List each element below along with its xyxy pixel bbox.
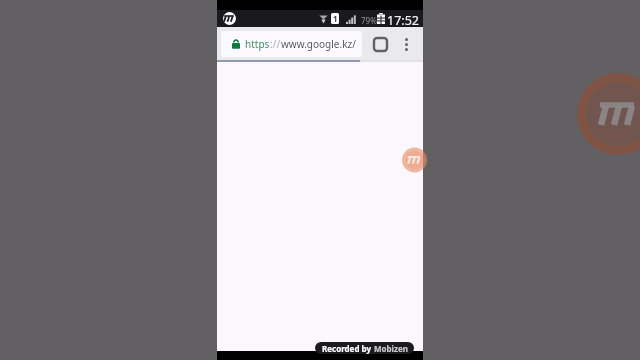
staticText: :// xyxy=(270,37,281,51)
staticText: https xyxy=(245,37,270,51)
staticText: 17:52 xyxy=(387,12,419,29)
staticText: Recorded by xyxy=(322,343,374,354)
staticText: www.google.kz/ xyxy=(281,37,356,51)
staticText: 1 xyxy=(333,13,338,24)
staticText: Mobizen xyxy=(374,343,408,354)
staticText: 79% xyxy=(361,15,377,26)
button[interactable]: Web page content xyxy=(217,62,423,351)
button[interactable]: Tabs xyxy=(368,32,392,56)
button[interactable]: https xyxy=(221,31,362,57)
button[interactable]: More options xyxy=(395,33,417,55)
button[interactable]: Mobizen recorder notification xyxy=(223,12,236,25)
